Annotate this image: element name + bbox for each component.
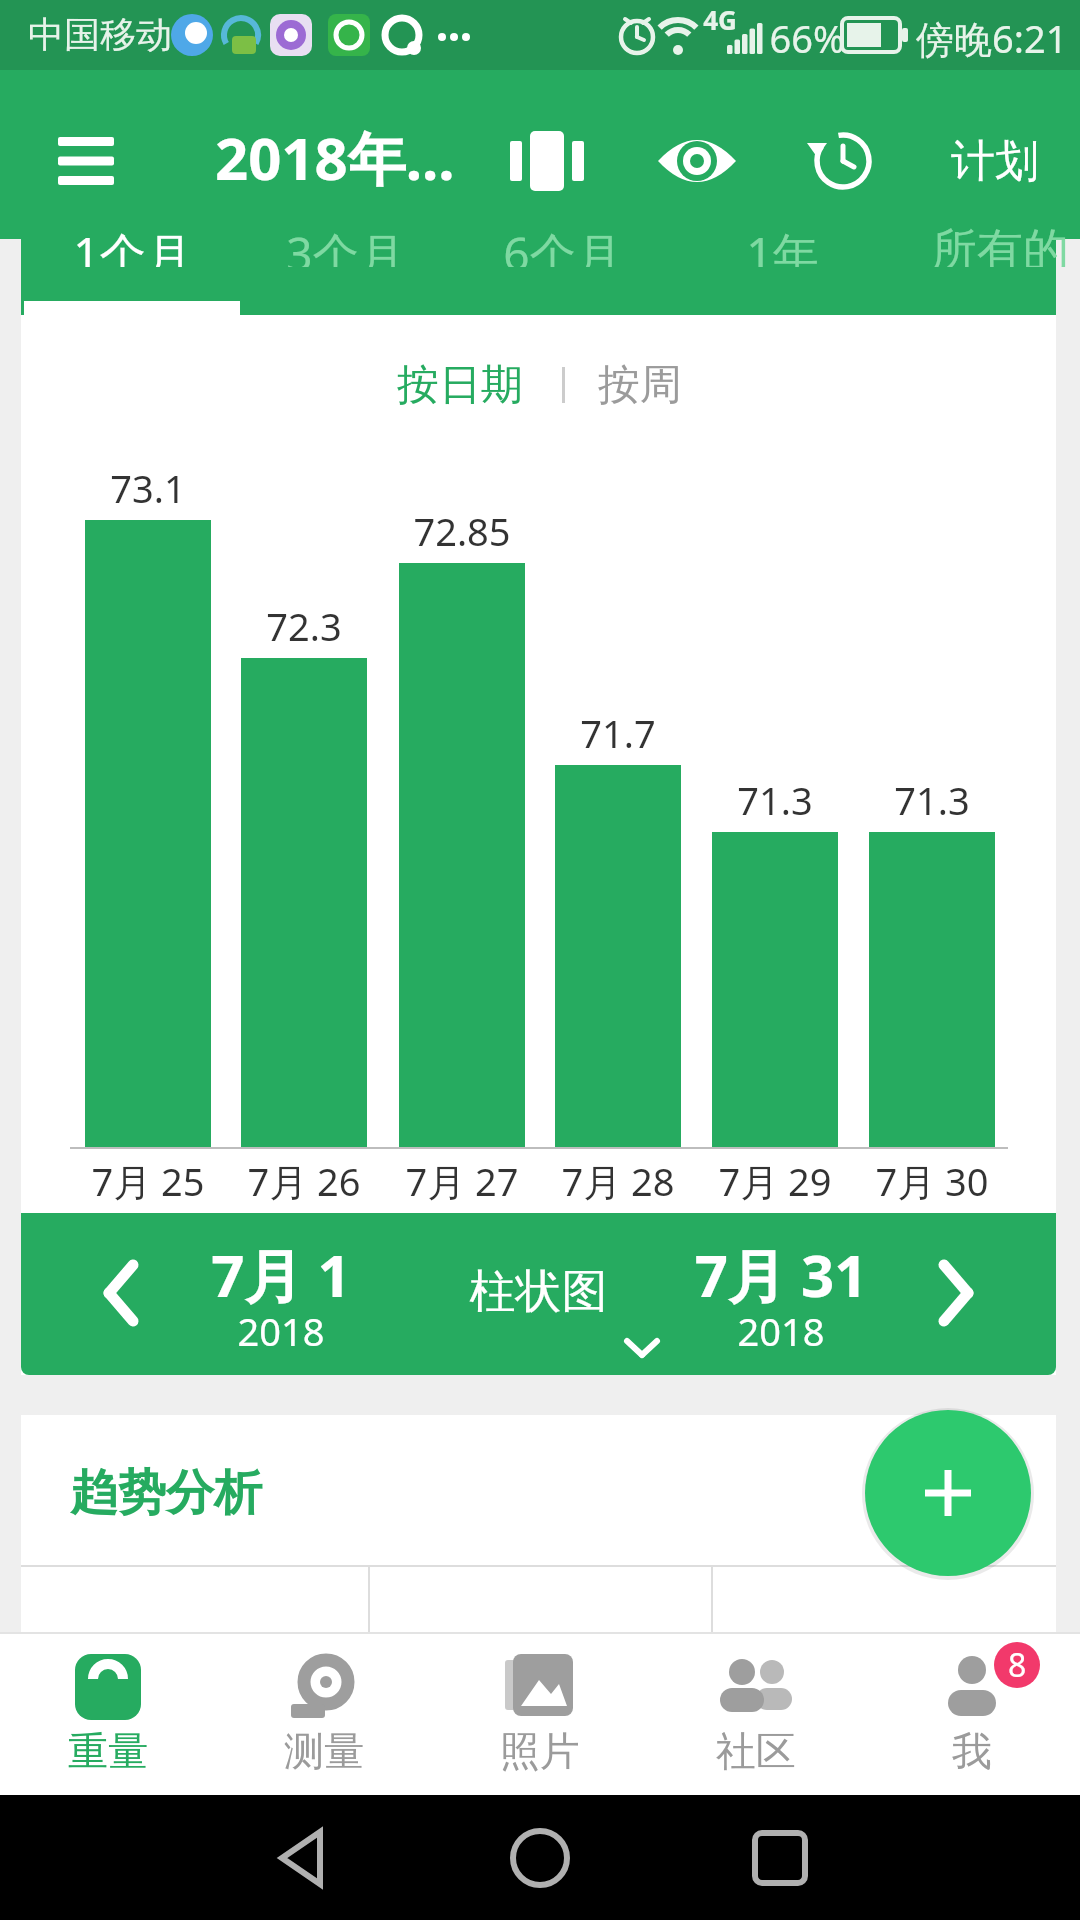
button[interactable]: 所有的 <box>890 222 1080 267</box>
staticText: 7月 25 <box>68 1155 228 1207</box>
staticText: 73.1 <box>68 462 228 514</box>
staticText: 1个月 <box>73 222 192 267</box>
staticText: 傍晚6:21 <box>916 12 1076 64</box>
staticText: 重量 <box>18 1726 198 1776</box>
button[interactable]: 测量 <box>234 1640 414 1790</box>
button[interactable]: 1年 <box>672 222 892 267</box>
button[interactable] <box>794 115 888 207</box>
button[interactable]: 计划 <box>930 115 1060 207</box>
button[interactable] <box>650 115 744 207</box>
staticText: 7月 27 <box>382 1155 542 1207</box>
button[interactable]: 6个月 <box>452 222 672 267</box>
button[interactable]: 我 <box>882 1640 1062 1790</box>
staticText: 测量 <box>234 1726 414 1776</box>
button[interactable] <box>40 115 132 207</box>
staticText: 按日期 <box>397 359 523 412</box>
staticText: 中国移动 <box>20 12 180 57</box>
staticText: 7月 1 <box>161 1235 401 1314</box>
button[interactable]: 按日期 <box>345 345 575 425</box>
staticText: 所有的 <box>931 222 1069 267</box>
staticText: 71.3 <box>695 774 855 826</box>
staticText: 71.7 <box>538 707 698 759</box>
button[interactable] <box>480 1805 600 1910</box>
staticText: 计划 <box>951 134 1039 189</box>
button[interactable] <box>240 1805 360 1910</box>
button[interactable] <box>906 1243 1006 1343</box>
staticText: 按周 <box>598 359 682 412</box>
staticText: 7月 31 <box>661 1235 901 1314</box>
button[interactable]: 按周 <box>555 345 725 425</box>
button[interactable]: 重量 <box>18 1640 198 1790</box>
button[interactable] <box>720 1805 840 1910</box>
staticText: 8 <box>1008 1643 1027 1687</box>
button[interactable]: 3个月 <box>235 222 455 267</box>
staticText: 71.3 <box>852 774 1012 826</box>
staticText: 7月 30 <box>852 1155 1012 1207</box>
staticText: 72.3 <box>224 600 384 652</box>
staticText: 2018 <box>161 1305 401 1357</box>
staticText: 7月 29 <box>695 1155 855 1207</box>
button[interactable]: 社区 <box>666 1640 846 1790</box>
staticText: 社区 <box>666 1726 846 1776</box>
staticText: 1年 <box>746 222 819 267</box>
button[interactable]: 照片 <box>450 1640 630 1790</box>
staticText: 2018 <box>661 1305 901 1357</box>
button[interactable]: 1个月 <box>22 222 242 267</box>
staticText: 66% <box>765 12 849 64</box>
staticText: 照片 <box>450 1726 630 1776</box>
button[interactable]: 柱状图 <box>421 1223 656 1368</box>
staticText: 7月 26 <box>224 1155 384 1207</box>
staticText: 4G <box>698 2 742 37</box>
staticText: 趋势分析 <box>70 1463 310 1523</box>
staticText: 72.85 <box>382 505 542 557</box>
button[interactable] <box>71 1243 171 1343</box>
staticText: 我 <box>882 1726 1062 1776</box>
staticText: 2018年... <box>215 118 465 197</box>
staticText: 柱状图 <box>421 1263 656 1321</box>
staticText: 6个月 <box>503 222 622 267</box>
staticText: 7月 28 <box>538 1155 698 1207</box>
staticText: 3个月 <box>286 222 405 267</box>
button[interactable] <box>865 1410 1031 1576</box>
button[interactable] <box>500 115 594 207</box>
